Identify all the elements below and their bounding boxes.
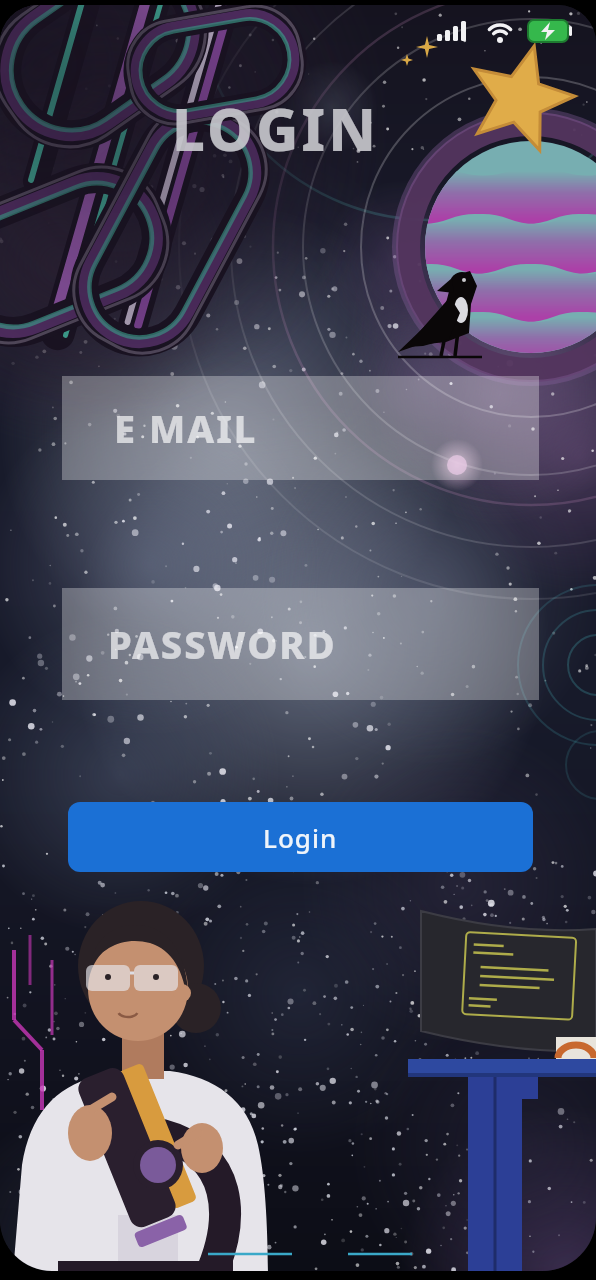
staticText: PASSWORD <box>108 618 337 670</box>
staticText: Login <box>263 820 338 855</box>
staticText: E MAIL <box>114 402 258 454</box>
button[interactable]: E MAIL <box>62 376 539 480</box>
staticText: LOGIN <box>172 89 380 168</box>
button[interactable]: PASSWORD <box>62 588 539 700</box>
button[interactable]: Login <box>68 802 533 872</box>
